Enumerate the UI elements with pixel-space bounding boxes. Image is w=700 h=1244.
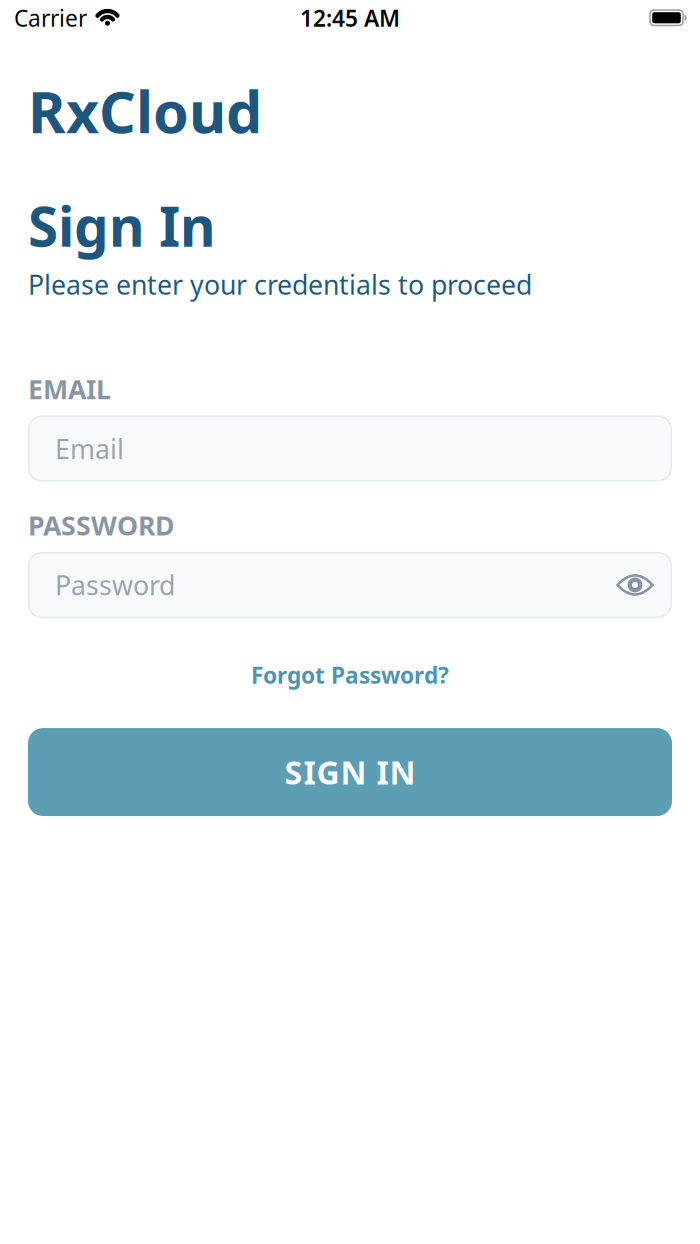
button[interactable]: SIGN IN xyxy=(28,728,672,816)
button[interactable]: Forgot Password? xyxy=(251,660,449,690)
staticText: PASSWORD xyxy=(28,508,175,543)
staticText: Carrier xyxy=(14,3,87,33)
staticText: SIGN IN xyxy=(284,751,415,793)
staticText: Forgot Password? xyxy=(251,660,449,690)
staticText: RxCloud xyxy=(28,73,262,149)
staticText: Please enter your credentials to proceed xyxy=(28,267,532,302)
button[interactable]: Email xyxy=(28,416,672,482)
staticText: EMAIL xyxy=(28,371,111,406)
staticText: Password xyxy=(55,567,175,603)
staticText: Sign In xyxy=(28,189,216,262)
staticText: 12:45 AM xyxy=(300,3,400,33)
button[interactable]: Password xyxy=(28,552,672,618)
staticText: Email xyxy=(55,431,124,466)
